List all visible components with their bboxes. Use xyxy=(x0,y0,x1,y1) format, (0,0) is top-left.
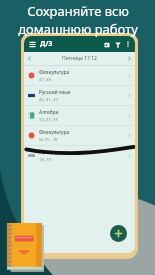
staticText: Физкультура xyxy=(39,69,70,76)
button[interactable]: Пятница 17.12 xyxy=(24,52,135,65)
staticText: Д/З xyxy=(40,39,53,49)
staticText: Физкультура xyxy=(39,129,70,136)
staticText: 18, 19 xyxy=(39,157,51,163)
button[interactable]: More options xyxy=(123,39,133,49)
staticText: Пятница 17.12 xyxy=(62,55,97,62)
staticText: 32, 33, 35 xyxy=(39,117,58,123)
staticText: Сохраняйте всю xyxy=(27,2,129,20)
button[interactable]: Calendar xyxy=(101,39,112,50)
staticText: Русский язык xyxy=(39,89,71,96)
button[interactable]: Физкультура xyxy=(24,66,135,85)
button[interactable]: Filter xyxy=(112,39,123,50)
button[interactable]: Add homework xyxy=(110,225,127,242)
button[interactable]: Происхождение xyxy=(24,146,135,165)
staticText: 40, 41, 43 xyxy=(39,97,58,103)
staticText: домашнюю работу xyxy=(18,20,138,38)
button[interactable]: Алгебра xyxy=(24,106,135,125)
staticText: 47, 48 xyxy=(39,77,51,83)
staticText: Алгебра xyxy=(39,109,59,116)
button[interactable]: Физкультура xyxy=(24,126,135,145)
staticText: № 75 - 78 xyxy=(39,137,58,143)
staticText: Происхождение xyxy=(39,149,78,156)
button[interactable]: Русский язык xyxy=(24,86,135,105)
button[interactable]: Menu xyxy=(26,38,38,50)
